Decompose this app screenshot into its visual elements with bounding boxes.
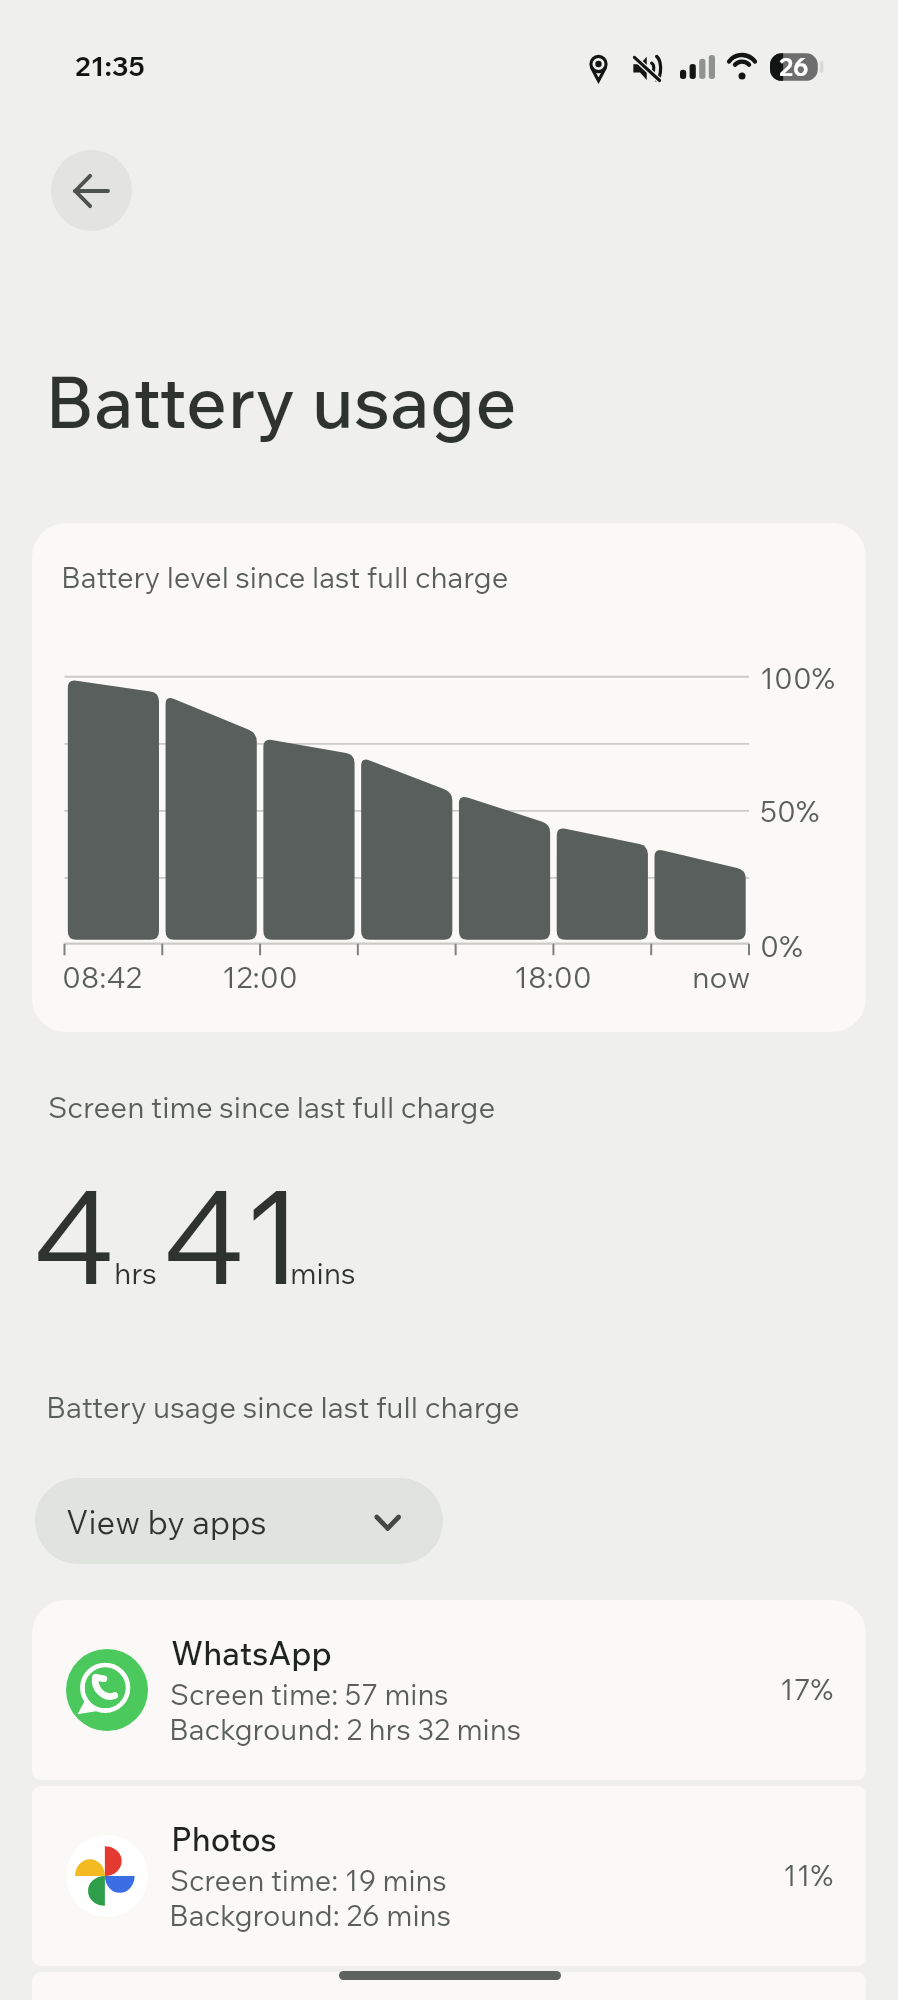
staticText: 26 (779, 51, 809, 83)
staticText: Background: 2 hrs 32 mins (169, 1711, 522, 1748)
button[interactable]: Chrome (32, 1972, 866, 2000)
staticText: 12:00 (222, 958, 298, 996)
staticText: 4 (32, 1153, 116, 1317)
staticText: WhatsApp (171, 1633, 332, 1673)
staticText: Battery level since last full charge (61, 559, 509, 596)
staticText: Screen time since last full charge (48, 1088, 496, 1125)
staticText: mins (290, 1254, 356, 1291)
button[interactable]: WhatsApp (32, 1600, 866, 1780)
staticText: Photos (171, 1819, 277, 1859)
staticText: 100% (760, 659, 835, 696)
staticText: Screen time: 57 mins (170, 1676, 449, 1712)
staticText: 08:42 (62, 958, 142, 996)
staticText: View by apps (66, 1501, 267, 1542)
staticText: 21:35 (75, 48, 145, 83)
staticText: 0% (760, 927, 803, 965)
button[interactable]: Navigate up (51, 150, 132, 231)
staticText: Screen time: 19 mins (170, 1862, 447, 1898)
staticText: 50% (760, 792, 820, 829)
staticText: 11% (783, 1857, 834, 1893)
staticText: Battery usage (45, 355, 517, 446)
staticText: now (692, 958, 751, 996)
staticText: Battery usage since last full charge (46, 1388, 520, 1425)
button[interactable]: Photos (32, 1786, 866, 1966)
staticText: hrs (114, 1254, 157, 1291)
staticText: 17% (780, 1671, 834, 1707)
staticText: Background: 26 mins (169, 1897, 451, 1934)
staticText: 41 (162, 1153, 305, 1317)
button[interactable]: View by apps (35, 1478, 443, 1564)
staticText: 18:00 (514, 958, 592, 996)
